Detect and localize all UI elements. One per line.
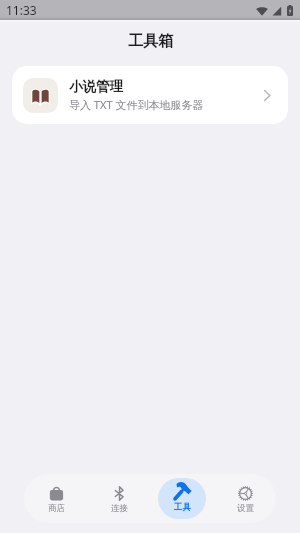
staticText: 小说管理 [69,78,123,95]
staticText: 11:33 [6,2,37,18]
button[interactable]: 小说管理 [12,66,288,124]
staticText: 导入 TXT 文件到本地服务器 [69,97,204,112]
button[interactable]: Connect [95,478,143,519]
staticText: 工具 [174,502,191,513]
button[interactable]: Settings [221,478,269,519]
button[interactable]: Store [32,478,80,519]
staticText: 连接 [111,503,128,514]
staticText: 工具箱 [128,32,173,51]
button[interactable]: Tools [158,478,206,519]
staticText: 商店 [48,503,65,514]
staticText: 设置 [237,503,254,514]
